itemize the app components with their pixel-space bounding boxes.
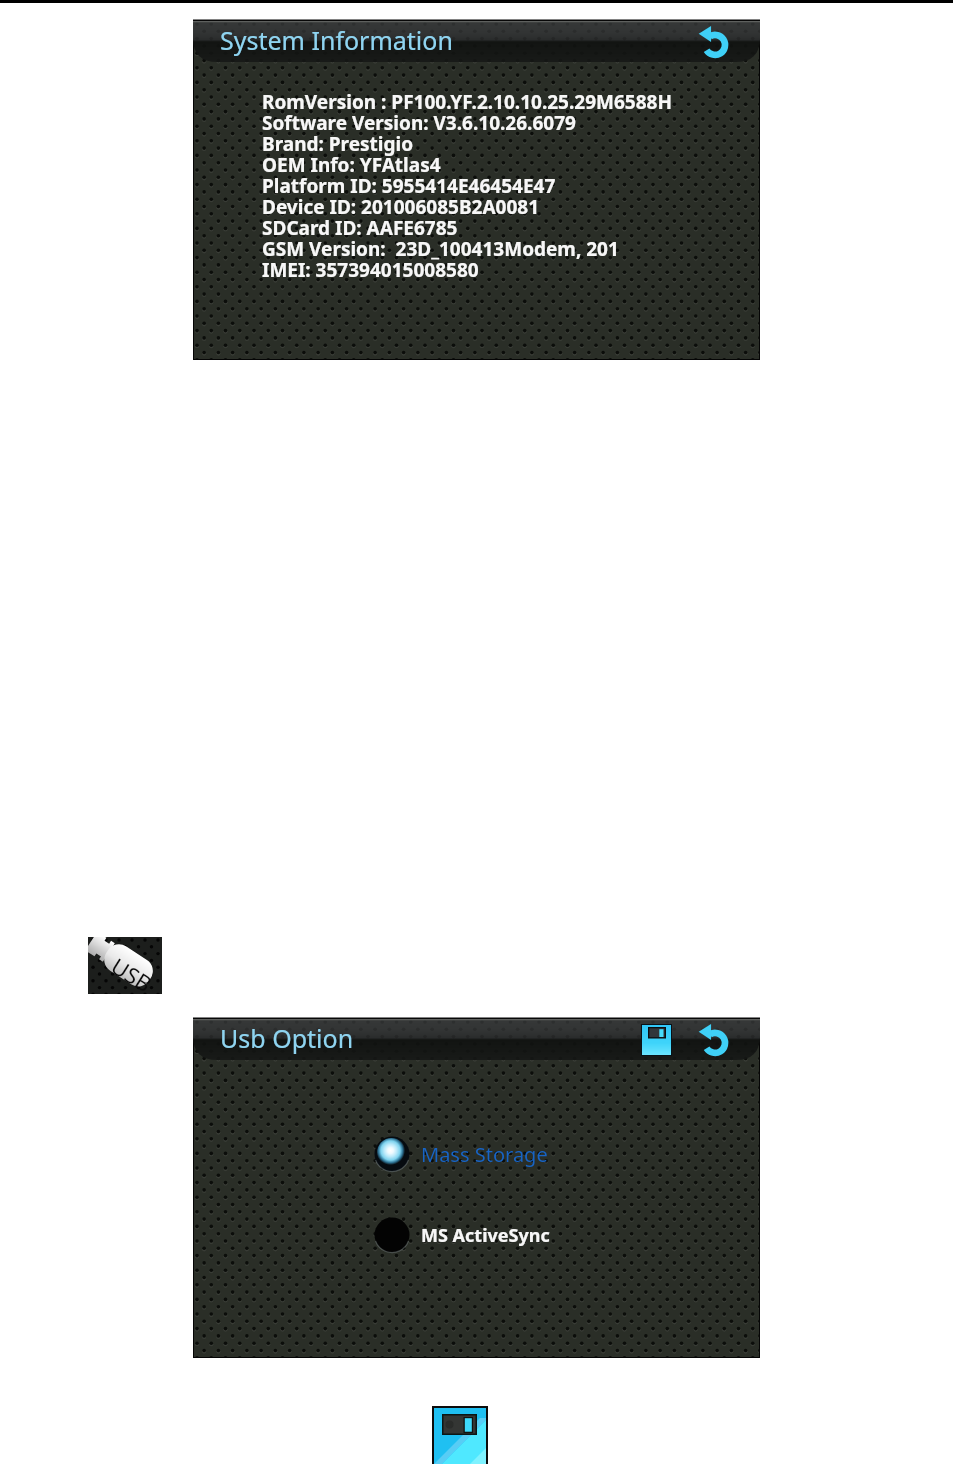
button[interactable]: USB storage — [88, 937, 162, 994]
staticText: OEM Info: YFAtlas4 — [262, 152, 441, 178]
staticText: GSM Version: 23D_100413Modem, 201 — [262, 236, 619, 262]
staticText: Mass Storage — [421, 1141, 548, 1168]
staticText: USB — [106, 950, 158, 994]
staticText: Brand: Prestigio — [262, 131, 414, 157]
staticText: MS ActiveSync — [421, 1223, 550, 1248]
staticText: System Information — [220, 23, 453, 57]
button[interactable]: Save — [432, 1406, 488, 1464]
staticText: SDCard ID: AAFE6785 — [262, 215, 458, 241]
button[interactable]: MS ActiveSync — [370, 1213, 580, 1257]
staticText: Device ID: 201006085B2A0081 — [262, 194, 540, 220]
staticText: IMEI: 357394015008580 — [262, 257, 479, 283]
staticText: Usb Option — [220, 1021, 354, 1055]
staticText: Platform ID: 5955414E46454E47 — [262, 173, 556, 199]
staticText: RomVersion : PF100.YF.2.10.10.25.29M6588… — [262, 89, 672, 115]
button[interactable]: Mass Storage — [370, 1132, 580, 1176]
button[interactable]: Back — [697, 1022, 735, 1060]
button[interactable]: Back — [697, 24, 735, 62]
staticText: Software Version: V3.6.10.26.6079 — [262, 110, 576, 136]
button[interactable]: Save — [641, 1024, 672, 1056]
